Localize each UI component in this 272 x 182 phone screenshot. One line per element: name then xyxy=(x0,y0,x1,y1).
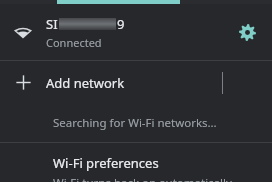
button[interactable]: Wi-Fi preferences xyxy=(0,143,272,182)
button[interactable]: Network settings xyxy=(222,4,272,60)
button[interactable]: Add network xyxy=(0,61,272,104)
staticText: Wi-Fi turns back on automatically xyxy=(53,175,232,182)
staticText: 9 xyxy=(117,15,125,33)
button[interactable]: SI xyxy=(0,4,272,60)
staticText: Connected xyxy=(46,35,102,50)
staticText: Searching for Wi-Fi networks… xyxy=(53,115,217,131)
staticText: Wi-Fi preferences xyxy=(53,154,159,172)
staticText: SI xyxy=(46,15,58,33)
button[interactable]: Scan QR code xyxy=(222,61,272,104)
staticText: Add network xyxy=(46,74,222,92)
